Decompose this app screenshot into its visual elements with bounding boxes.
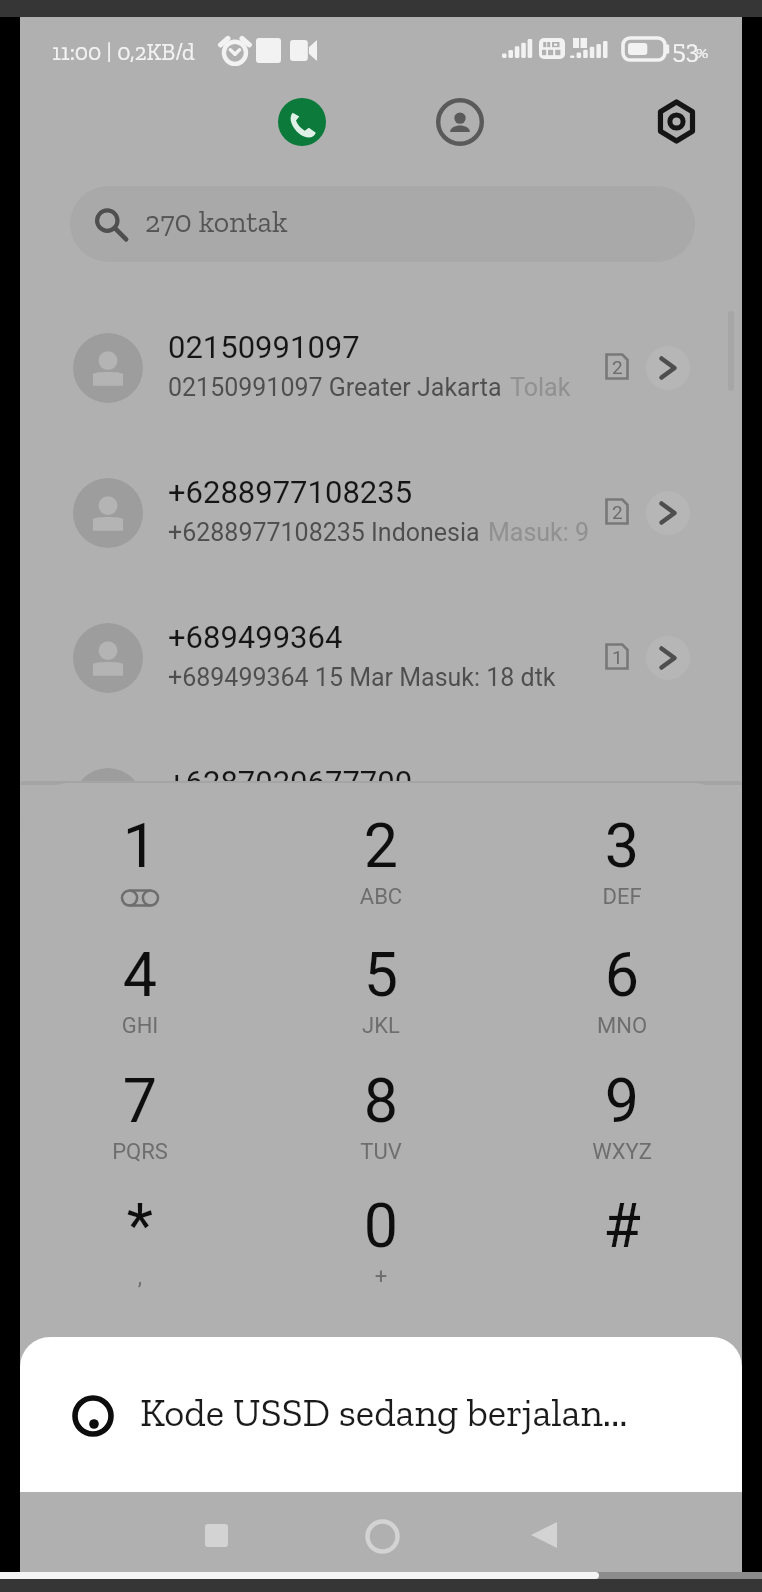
staticText: +6288977108235 <box>168 474 413 510</box>
staticText: TUV <box>301 1139 461 1165</box>
staticText: 1 <box>60 810 220 881</box>
staticText: # <box>542 1190 702 1261</box>
staticText: MNO <box>542 1013 702 1039</box>
staticText: 8 <box>301 1065 461 1136</box>
staticText: % <box>696 41 709 63</box>
button[interactable]: +6288977108235 <box>20 441 742 586</box>
staticText: 4 <box>60 939 220 1010</box>
button[interactable]: Call details <box>646 491 690 535</box>
button[interactable]: 7 <box>60 1065 220 1191</box>
staticText: 53 <box>672 33 700 65</box>
staticText: DEF <box>542 884 702 910</box>
staticText: 2 <box>612 356 623 378</box>
button[interactable]: Dialpad <box>272 92 332 152</box>
staticText: 5 <box>301 939 461 1010</box>
button[interactable]: 1 <box>60 810 220 936</box>
staticText: * <box>60 1190 220 1261</box>
button[interactable]: * <box>60 1190 220 1316</box>
staticText: JKL <box>301 1013 461 1039</box>
button[interactable]: 0 <box>301 1190 461 1316</box>
button[interactable]: 02150991097 <box>20 296 742 441</box>
staticText: GHI <box>60 1013 220 1039</box>
staticText: 1 <box>612 646 623 668</box>
staticText: 3 <box>542 810 702 881</box>
button[interactable]: 4 <box>60 939 220 1065</box>
button[interactable]: 3 <box>542 810 702 936</box>
button[interactable]: Contacts <box>430 92 490 152</box>
staticText: ABC <box>301 884 461 910</box>
staticText: 0 <box>301 1190 461 1261</box>
staticText: 2 <box>612 501 623 523</box>
staticText: WXYZ <box>542 1139 702 1165</box>
button[interactable]: 270 kontak <box>70 186 695 262</box>
staticText: PQRS <box>60 1139 220 1165</box>
button[interactable]: Recent apps <box>181 1500 251 1570</box>
staticText: +6287020677700 <box>168 764 413 800</box>
staticText: 2 <box>301 810 461 881</box>
staticText: 270 kontak <box>145 204 288 240</box>
staticText: 11:00 | 0,2KB/d <box>52 38 195 66</box>
staticText: 02150991097 Greater Jakarta <box>168 373 502 402</box>
staticText: +689499364 15 Mar Masuk: 18 dtk <box>168 663 556 692</box>
staticText: Tolak <box>510 373 571 402</box>
staticText: 02150991097 <box>168 329 360 365</box>
button[interactable]: Call details <box>646 636 690 680</box>
button[interactable]: 6 <box>542 939 702 1065</box>
button[interactable]: 9 <box>542 1065 702 1191</box>
staticText: +6288977108235 Indonesia <box>168 518 480 547</box>
staticText: + <box>301 1264 461 1290</box>
button[interactable]: 8 <box>301 1065 461 1191</box>
staticText: 6 <box>542 939 702 1010</box>
button[interactable]: Settings <box>646 93 706 153</box>
button[interactable]: 5 <box>301 939 461 1065</box>
staticText: 7 <box>60 1065 220 1136</box>
button[interactable]: Call details <box>646 346 690 390</box>
button[interactable]: Home <box>347 1501 417 1571</box>
button[interactable]: # <box>542 1190 702 1316</box>
staticText: Masuk: 9 <box>488 518 590 547</box>
button[interactable]: Back <box>509 1500 579 1570</box>
staticText: Kode USSD sedang berjalan... <box>140 1389 628 1436</box>
staticText: +689499364 <box>168 619 343 655</box>
button[interactable]: +689499364 <box>20 586 742 731</box>
button[interactable]: 2 <box>301 810 461 936</box>
staticText: 9 <box>542 1065 702 1136</box>
button[interactable]: +6287020677700 <box>20 731 742 876</box>
